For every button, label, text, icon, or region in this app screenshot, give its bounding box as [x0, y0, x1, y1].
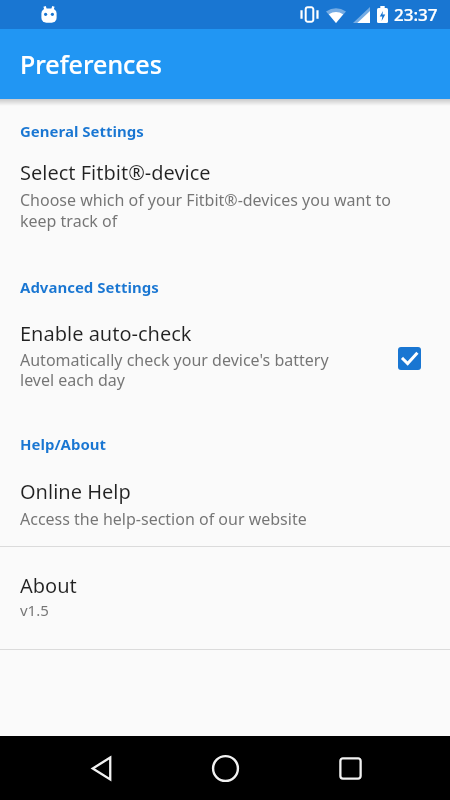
staticText: Enable auto-check	[20, 320, 192, 347]
button[interactable]: Select Fitbit®-device	[0, 159, 450, 232]
button[interactable]: Online Help	[0, 478, 450, 530]
staticText: Access the help-section of our website	[20, 508, 307, 530]
staticText: Help/About	[20, 434, 107, 454]
staticText: Advanced Settings	[20, 277, 159, 297]
staticText: Automatically check your device's batter…	[20, 349, 329, 390]
staticText: Select Fitbit®-device	[20, 159, 211, 186]
staticText: Choose which of your Fitbit®-devices you…	[20, 189, 391, 232]
staticText: About	[20, 572, 77, 599]
button[interactable]: Enable auto-check	[0, 320, 450, 390]
button[interactable]	[201, 744, 249, 792]
staticText: v1.5	[20, 600, 49, 620]
button[interactable]	[326, 744, 374, 792]
staticText: General Settings	[20, 121, 144, 141]
button[interactable]: About	[0, 547, 450, 649]
button[interactable]	[77, 744, 125, 792]
staticText: Online Help	[20, 478, 131, 505]
button[interactable]	[398, 347, 421, 370]
staticText: Preferences	[20, 47, 162, 81]
staticText: 23:37	[394, 3, 438, 26]
